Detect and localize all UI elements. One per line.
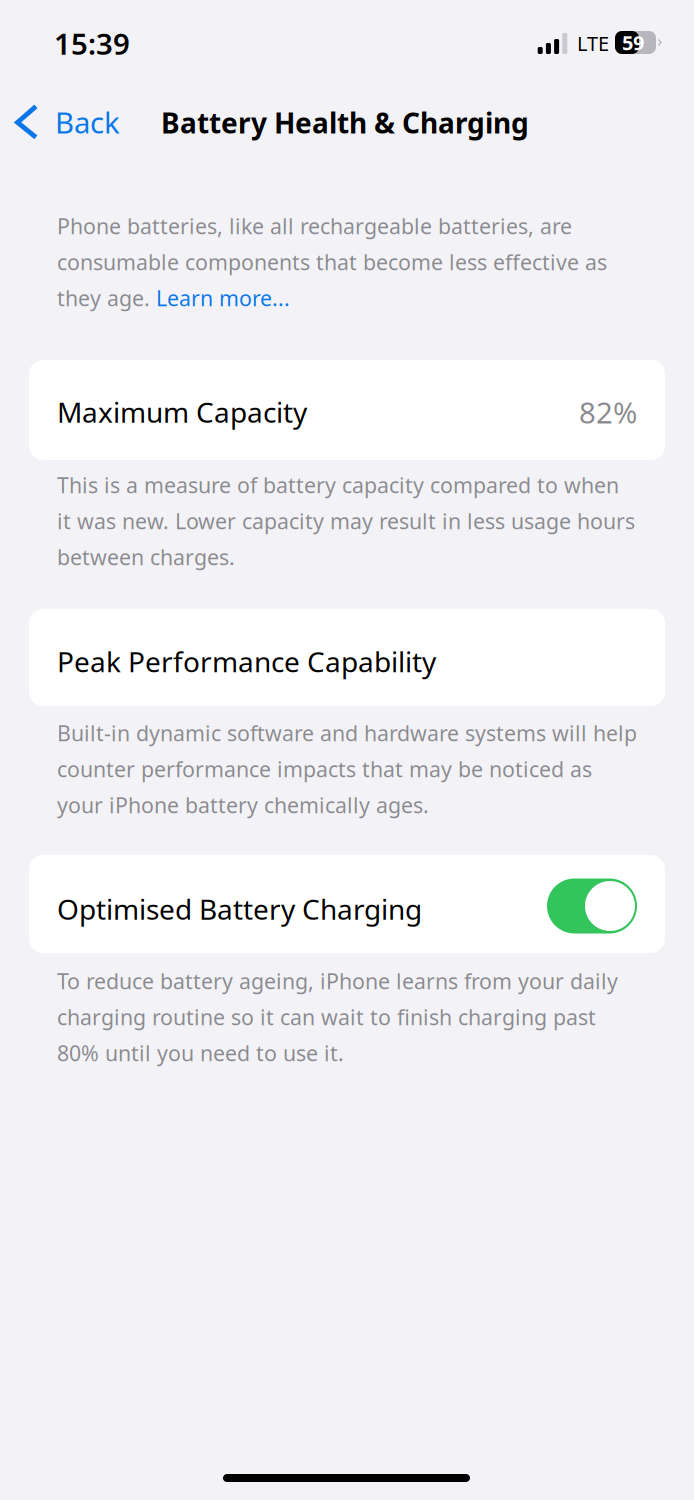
button[interactable]: Learn more...	[156, 284, 290, 312]
staticText: LTE	[577, 30, 609, 57]
staticText: Optimised Battery Charging	[57, 890, 422, 928]
staticText: Battery Health & Charging	[161, 104, 529, 141]
button[interactable]: Maximum Capacity	[29, 360, 665, 460]
staticText: To reduce battery ageing, iPhone learns …	[57, 967, 618, 995]
staticText: 15:39	[54, 24, 130, 63]
staticText: between charges.	[57, 543, 235, 571]
staticText: counter performance impacts that may be …	[57, 755, 592, 783]
button[interactable]: Peak Performance Capability	[29, 609, 665, 706]
button[interactable]: Optimised Battery Charging	[547, 868, 637, 943]
staticText: charging routine so it can wait to finis…	[57, 1003, 596, 1031]
staticText: Maximum Capacity	[57, 393, 307, 431]
staticText: your iPhone battery chemically ages.	[57, 791, 429, 819]
staticText: Back	[55, 102, 120, 141]
staticText: Built-in dynamic software and hardware s…	[57, 719, 637, 747]
staticText: Peak Performance Capability	[57, 643, 436, 680]
staticText: This is a measure of battery capacity co…	[57, 471, 619, 499]
button[interactable]: Back	[0, 95, 136, 149]
staticText: they age.	[57, 284, 156, 312]
staticText: 82%	[579, 392, 637, 431]
staticText: 80% until you need to use it.	[57, 1039, 344, 1067]
staticText: consumable components that become less e…	[57, 248, 607, 276]
staticText: Learn more...	[156, 284, 290, 312]
staticText: Phone batteries, like all rechargeable b…	[57, 212, 572, 240]
staticText: 59	[622, 29, 644, 56]
staticText: it was new. Lower capacity may result in…	[57, 507, 635, 535]
